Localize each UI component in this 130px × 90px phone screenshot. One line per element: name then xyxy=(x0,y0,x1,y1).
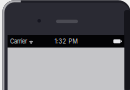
staticText: 1:32 PM xyxy=(54,38,77,45)
staticText: Carrier xyxy=(10,38,27,45)
